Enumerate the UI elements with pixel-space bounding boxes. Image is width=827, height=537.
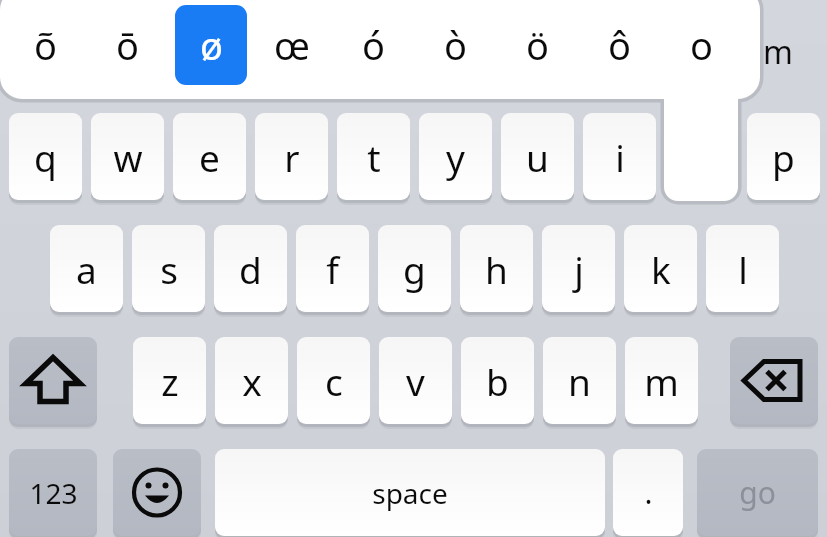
staticText: q xyxy=(34,132,57,182)
button[interactable]: p xyxy=(747,113,820,200)
button[interactable]: space xyxy=(215,449,605,536)
staticText: i xyxy=(615,132,625,182)
button[interactable]: e xyxy=(173,113,246,200)
button[interactable]: r xyxy=(255,113,328,200)
button[interactable]: c xyxy=(297,337,370,424)
staticText: ö xyxy=(526,19,549,71)
button[interactable]: y xyxy=(419,113,492,200)
staticText: ò xyxy=(444,19,467,71)
staticText: n xyxy=(568,356,591,406)
button[interactable]: n xyxy=(543,337,616,424)
button[interactable]: . xyxy=(613,449,683,536)
staticText: r xyxy=(284,132,300,182)
button[interactable]: u xyxy=(501,113,574,200)
button[interactable] xyxy=(665,113,738,200)
button[interactable]: l xyxy=(706,225,779,312)
staticText: ô xyxy=(608,19,631,71)
staticText: l xyxy=(738,244,748,294)
staticText: . xyxy=(644,472,653,513)
button[interactable]: d xyxy=(214,225,287,312)
staticText: u xyxy=(526,132,549,182)
staticText: v xyxy=(406,356,425,406)
button[interactable]: h xyxy=(460,225,533,312)
staticText: go xyxy=(739,472,776,513)
button[interactable]: o xyxy=(665,4,738,86)
staticText: h xyxy=(485,244,508,294)
button[interactable]: Emoji xyxy=(113,449,201,536)
staticText: 123 xyxy=(29,474,78,512)
button[interactable]: i xyxy=(583,113,656,200)
button[interactable]: a xyxy=(50,225,123,312)
button[interactable]: ô xyxy=(583,4,656,86)
button[interactable]: ö xyxy=(501,4,574,86)
staticText: p xyxy=(772,132,795,182)
button[interactable]: k xyxy=(624,225,697,312)
staticText: y xyxy=(446,132,465,182)
staticText: o xyxy=(690,19,713,71)
button[interactable]: õ xyxy=(9,4,82,86)
button[interactable]: ø xyxy=(175,5,247,85)
staticText: ó xyxy=(362,19,385,71)
staticText: m xyxy=(763,30,793,74)
button[interactable]: s xyxy=(132,225,205,312)
staticText: b xyxy=(486,356,509,406)
staticText: ō xyxy=(116,19,139,71)
button[interactable]: j xyxy=(542,225,615,312)
button[interactable]: Shift xyxy=(9,337,97,424)
staticText: õ xyxy=(34,19,57,71)
button[interactable]: f xyxy=(296,225,369,312)
staticText: space xyxy=(372,474,448,512)
staticText: k xyxy=(651,244,671,294)
button[interactable]: w xyxy=(91,113,164,200)
button[interactable]: œ xyxy=(255,4,328,86)
button[interactable]: ó xyxy=(337,4,410,86)
staticText: j xyxy=(574,244,584,294)
staticText: g xyxy=(403,244,426,294)
button[interactable]: Backspace xyxy=(730,337,818,424)
button[interactable]: x xyxy=(215,337,288,424)
staticText: a xyxy=(76,244,97,294)
staticText: e xyxy=(199,132,220,182)
button[interactable]: z xyxy=(133,337,206,424)
button[interactable]: g xyxy=(378,225,451,312)
staticText: w xyxy=(113,132,143,182)
button[interactable]: ò xyxy=(419,4,492,86)
button[interactable]: go xyxy=(697,449,818,536)
button[interactable]: t xyxy=(337,113,410,200)
button[interactable]: b xyxy=(461,337,534,424)
staticText: c xyxy=(325,356,343,406)
staticText: x xyxy=(242,356,262,406)
staticText: f xyxy=(326,244,339,294)
staticText: t xyxy=(367,132,381,182)
staticText: m xyxy=(644,356,679,406)
staticText: d xyxy=(239,244,262,294)
button[interactable]: v xyxy=(379,337,452,424)
staticText: ø xyxy=(200,19,223,71)
button[interactable]: ō xyxy=(91,4,164,86)
button[interactable]: m xyxy=(625,337,698,424)
button[interactable]: q xyxy=(9,113,82,200)
staticText: œ xyxy=(274,19,310,71)
button[interactable]: 123 xyxy=(9,449,97,536)
staticText: s xyxy=(160,244,178,294)
staticText: z xyxy=(161,356,179,406)
